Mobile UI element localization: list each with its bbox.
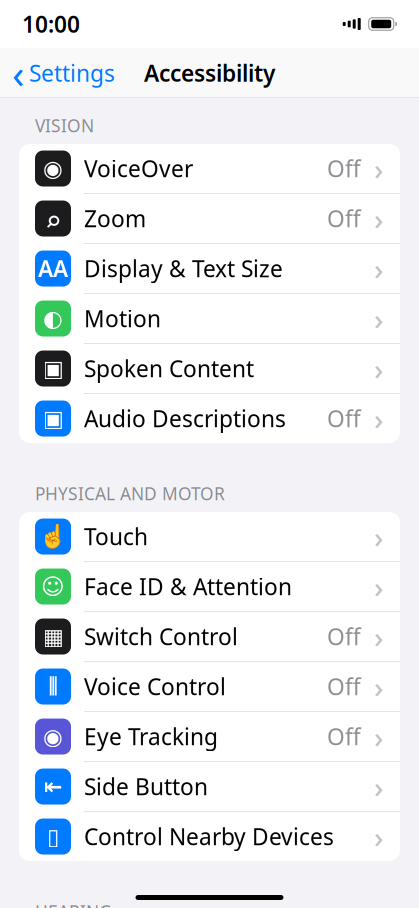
staticText: VoiceOver <box>84 153 193 184</box>
staticText: Spoken Content <box>84 353 254 384</box>
button[interactable]: ▣ <box>19 344 400 394</box>
staticText: › <box>374 249 384 288</box>
staticText: Switch Control <box>84 621 238 652</box>
staticText: ◐ <box>43 306 63 331</box>
staticText: › <box>374 767 384 806</box>
button[interactable]: ‹ <box>0 51 127 95</box>
staticText: Voice Control <box>84 671 226 702</box>
staticText: Face ID & Attention <box>84 571 292 602</box>
staticText: › <box>374 667 384 706</box>
staticText: ▦ <box>42 624 63 649</box>
staticText: Off <box>327 403 361 434</box>
staticText: ☝ <box>39 524 67 549</box>
staticText: ⇤ <box>43 774 62 799</box>
staticText: VISION <box>35 114 94 137</box>
staticText: › <box>374 299 384 338</box>
button[interactable]: ◐ <box>19 294 400 344</box>
staticText: Audio Descriptions <box>84 403 286 434</box>
staticText: Motion <box>84 303 161 334</box>
button[interactable]: ⇤ <box>19 762 400 812</box>
staticText: ◉ <box>43 156 63 181</box>
staticText: ▯ <box>47 824 59 849</box>
button[interactable]: ▣ <box>19 394 400 443</box>
staticText: ◉ <box>43 724 63 749</box>
staticText: ▣ <box>42 406 63 431</box>
button[interactable]: ⦀ <box>19 662 400 712</box>
staticText: › <box>374 399 384 438</box>
staticText: Settings <box>29 58 115 88</box>
staticText: Off <box>327 203 361 234</box>
staticText: 10:00 <box>22 9 80 39</box>
button[interactable]: ☝ <box>19 512 400 562</box>
staticText: Accessibility <box>144 58 275 88</box>
staticText: ‹ <box>12 46 24 99</box>
staticText: › <box>374 567 384 606</box>
staticText: › <box>374 349 384 388</box>
staticText: Side Button <box>84 771 208 802</box>
button[interactable]: ☺ <box>19 562 400 612</box>
staticText: PHYSICAL AND MOTOR <box>35 482 225 505</box>
staticText: Touch <box>84 521 148 552</box>
staticText: › <box>374 717 384 756</box>
button[interactable]: ◉ <box>19 712 400 762</box>
button[interactable]: AA <box>19 244 400 294</box>
staticText: Zoom <box>84 203 146 234</box>
staticText: Control Nearby Devices <box>84 821 334 852</box>
staticText: › <box>374 199 384 238</box>
staticText: › <box>374 817 384 856</box>
staticText: AA <box>38 253 68 284</box>
staticText: Off <box>327 721 361 752</box>
staticText: Off <box>327 153 361 184</box>
button[interactable]: ▯ <box>19 812 400 861</box>
button[interactable]: ◉ <box>19 144 400 194</box>
staticText: ☺ <box>41 574 65 599</box>
staticText: › <box>374 149 384 188</box>
staticText: Off <box>327 621 361 652</box>
staticText: Eye Tracking <box>84 721 218 752</box>
staticText: › <box>374 517 384 556</box>
staticText: HEARING <box>35 900 112 908</box>
staticText: ⦀ <box>48 675 58 698</box>
staticText: › <box>374 617 384 656</box>
button[interactable]: ⌕ <box>19 194 400 244</box>
button[interactable]: ▦ <box>19 612 400 662</box>
staticText: ▣ <box>42 356 63 381</box>
staticText: Display & Text Size <box>84 253 283 284</box>
staticText: Off <box>327 671 361 702</box>
staticText: ⌕ <box>46 196 60 241</box>
